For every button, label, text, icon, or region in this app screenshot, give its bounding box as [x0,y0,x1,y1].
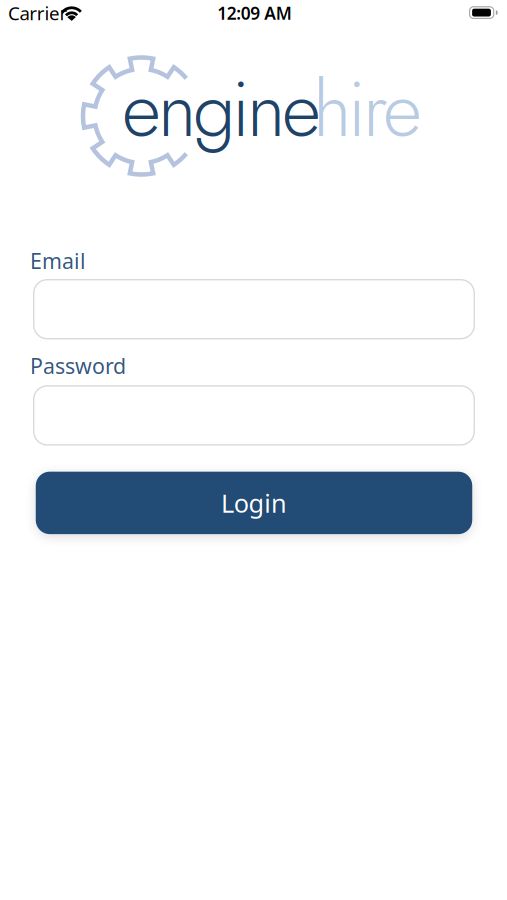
staticText: Password [30,352,126,380]
button[interactable]: Login [36,472,472,534]
staticText: Login [221,486,287,520]
staticText: hire [313,55,422,164]
staticText: engine [122,55,321,164]
button[interactable]: Password [33,385,475,446]
staticText: 12:09 AM [217,1,292,24]
button[interactable]: Email [33,279,475,339]
staticText: Carrier [8,1,68,25]
staticText: Email [30,247,86,275]
